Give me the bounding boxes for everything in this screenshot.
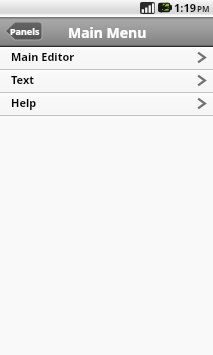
other: Battery charging <box>158 2 172 13</box>
staticText: Help <box>11 95 37 110</box>
staticText: 1:19 <box>174 0 196 15</box>
staticText: PM <box>197 3 210 14</box>
button[interactable]: Panels <box>5 22 42 40</box>
staticText: Panels <box>10 25 40 37</box>
button[interactable]: Help <box>0 93 213 115</box>
button[interactable]: Main Editor <box>0 47 213 69</box>
staticText: Main Editor <box>11 49 75 64</box>
staticText: Text <box>11 72 35 87</box>
other: Open <box>197 52 206 63</box>
staticText: Main Menu <box>68 23 147 42</box>
other: Open <box>197 98 206 109</box>
other: Open <box>197 75 206 86</box>
button[interactable]: Text <box>0 70 213 92</box>
